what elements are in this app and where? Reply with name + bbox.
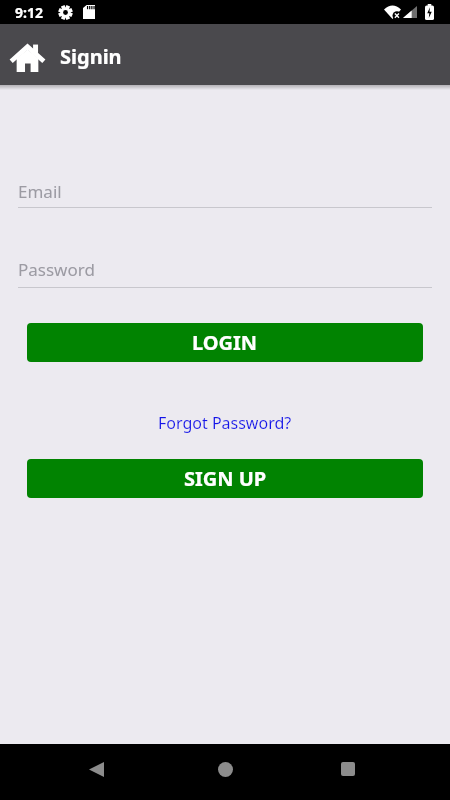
staticText: Signin xyxy=(60,43,122,70)
button[interactable]: LOGIN xyxy=(27,323,423,362)
button[interactable] xyxy=(201,745,249,793)
staticText: SIGN UP xyxy=(184,465,267,492)
button[interactable] xyxy=(72,745,120,793)
staticText: LOGIN xyxy=(192,329,258,356)
button[interactable] xyxy=(324,745,372,793)
staticText: Password xyxy=(18,258,95,281)
button[interactable]: Password xyxy=(18,258,432,287)
button[interactable]: SIGN UP xyxy=(27,459,423,498)
button[interactable] xyxy=(0,27,56,83)
staticText: Forgot Password? xyxy=(158,412,292,434)
button[interactable]: Email xyxy=(18,180,432,207)
staticText: Email xyxy=(18,180,62,203)
staticText: 9:12 xyxy=(15,3,43,22)
button[interactable]: Forgot Password? xyxy=(158,412,292,434)
